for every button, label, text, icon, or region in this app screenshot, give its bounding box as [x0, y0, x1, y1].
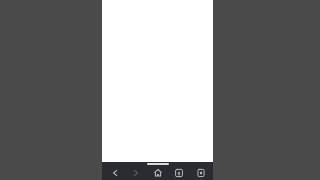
button[interactable]: Tabs — [192, 166, 210, 180]
button[interactable]: Downloads — [170, 166, 188, 180]
button[interactable]: Forward — [127, 166, 145, 180]
button[interactable]: Back — [106, 166, 124, 180]
button[interactable]: Home — [149, 166, 167, 180]
